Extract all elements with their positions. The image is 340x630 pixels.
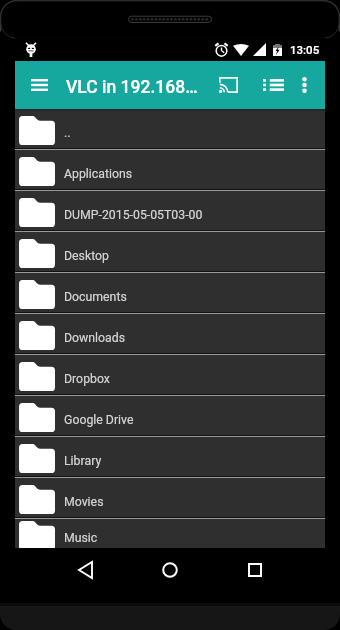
button[interactable]: Recent apps [227,550,283,590]
button[interactable]: More options [290,61,318,109]
button[interactable]: Open navigation drawer [17,61,61,109]
button[interactable]: Back [57,550,113,590]
staticText: .. [64,126,71,140]
button[interactable]: Documents [15,273,325,312]
staticText: Downloads [64,331,126,345]
button[interactable]: Music [15,519,325,548]
staticText: Google Drive [64,413,134,427]
button[interactable]: Google Drive [15,396,325,435]
button[interactable]: Cast [207,61,249,109]
button[interactable]: Movies [15,478,325,517]
button[interactable]: DUMP-2015-05-05T03-00 [15,191,325,230]
button[interactable]: Library [15,437,325,476]
staticText: VLC in 192.168… [66,77,198,98]
staticText: Movies [64,495,104,509]
staticText: Documents [64,290,127,304]
button[interactable]: Applications [15,150,325,189]
staticText: 13:05 [290,43,320,56]
staticText: Library [64,454,102,468]
staticText: DUMP-2015-05-05T03-00 [64,208,203,222]
button[interactable]: Downloads [15,314,325,353]
button[interactable]: Desktop [15,232,325,271]
button[interactable]: .. [15,109,325,148]
staticText: Desktop [64,249,109,263]
staticText: Dropbox [64,372,110,386]
staticText: Music [64,531,98,545]
button[interactable]: List view [252,61,294,109]
button[interactable]: Home [142,550,198,590]
button[interactable]: Dropbox [15,355,325,394]
staticText: Applications [64,167,133,181]
